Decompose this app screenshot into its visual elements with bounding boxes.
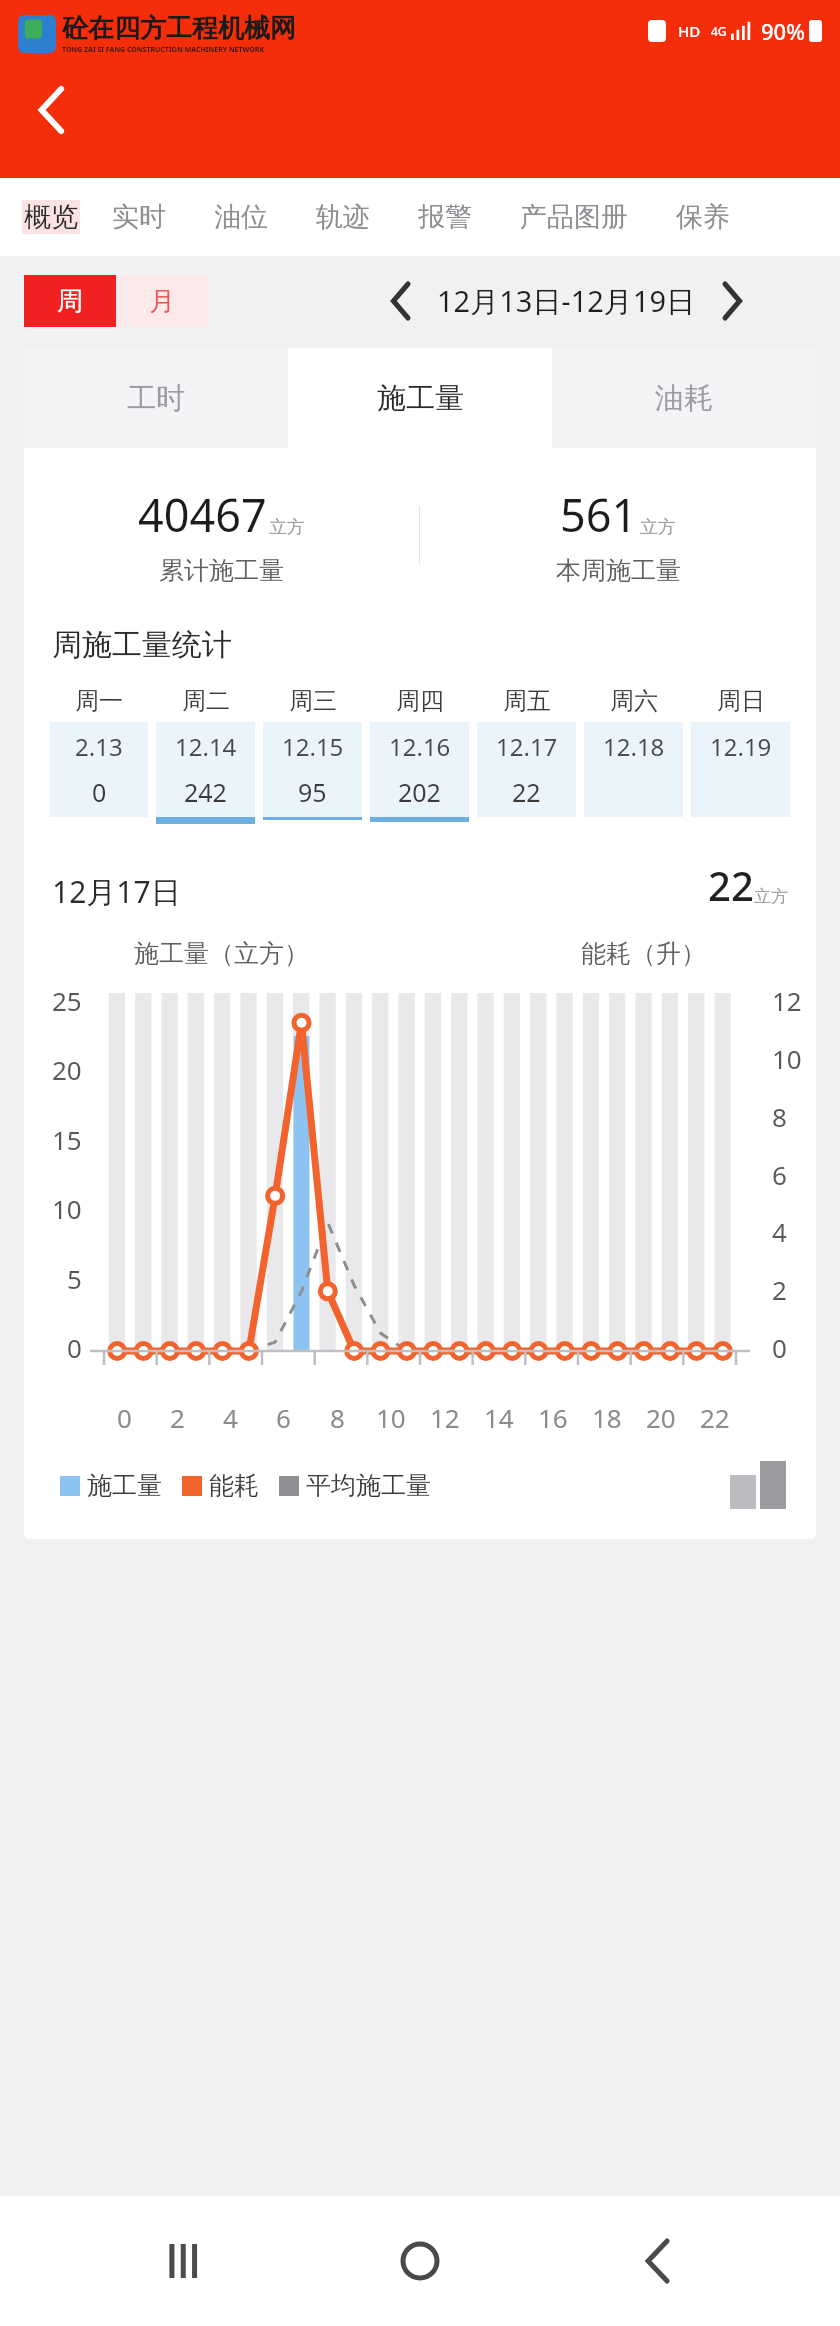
button[interactable]: 月 <box>116 275 208 327</box>
staticText: 周日 <box>717 686 765 716</box>
staticText: 轨迹 <box>316 200 370 234</box>
staticText: 12.16 <box>389 730 451 763</box>
staticText: 产品图册 <box>520 200 628 234</box>
button[interactable]: 轨迹 <box>300 178 386 256</box>
staticText: 8 <box>772 1099 787 1134</box>
button[interactable]: Back <box>603 2206 713 2316</box>
staticText: 12月13日-12月19日 <box>437 281 696 321</box>
staticText: 立方 <box>754 886 788 907</box>
staticText: 12.18 <box>603 730 665 763</box>
staticText: 施工量（立方） <box>134 938 309 969</box>
staticText: 2.13 <box>75 730 123 763</box>
staticText: 6 <box>772 1157 787 1192</box>
staticText: 22 <box>708 858 754 912</box>
staticText: 14 <box>484 1400 514 1435</box>
staticText: 0 <box>117 1400 132 1435</box>
staticText: 12 <box>772 983 802 1018</box>
button[interactable]: 实时 <box>96 178 182 256</box>
staticText: 2 <box>772 1272 787 1307</box>
staticText: 40467 <box>138 484 267 545</box>
staticText: 周三 <box>289 686 337 716</box>
staticText: 12.19 <box>710 730 772 763</box>
button[interactable]: Next week <box>706 275 758 327</box>
staticText: 16 <box>538 1400 568 1435</box>
staticText: 6 <box>276 1400 291 1435</box>
staticText: 施工量 <box>377 380 464 417</box>
staticText: 12.15 <box>282 730 344 763</box>
staticText: 10 <box>772 1041 802 1076</box>
button[interactable]: 报警 <box>402 178 488 256</box>
staticText: 0 <box>67 1330 82 1365</box>
staticText: 202 <box>398 775 441 809</box>
button[interactable]: 概览 <box>22 178 80 256</box>
staticText: 周 <box>57 285 83 318</box>
staticText: 累计施工量 <box>159 555 284 586</box>
staticText: 10 <box>376 1400 406 1435</box>
staticText: 报警 <box>418 200 472 234</box>
staticText: 概览 <box>24 200 78 234</box>
staticText: 4 <box>772 1214 787 1249</box>
staticText: 月 <box>149 285 175 318</box>
button[interactable]: 周一 <box>46 686 152 817</box>
staticText: 周施工量统计 <box>52 626 232 664</box>
button[interactable]: Back <box>24 82 80 138</box>
staticText: 0 <box>92 775 107 809</box>
button[interactable]: Recents <box>128 2206 238 2316</box>
staticText: HD <box>678 21 701 41</box>
staticText: 油耗 <box>655 380 713 417</box>
button[interactable]: Home <box>365 2206 475 2316</box>
staticText: 周四 <box>396 686 444 716</box>
button[interactable]: 周五 <box>473 686 580 817</box>
staticText: 砼在四方工程机械网 <box>62 12 296 45</box>
staticText: 油位 <box>214 200 268 234</box>
staticText: 12月17日 <box>52 871 181 912</box>
staticText: 8 <box>330 1400 345 1435</box>
button[interactable]: 周三 <box>259 686 366 820</box>
staticText: 20 <box>52 1052 82 1087</box>
button[interactable]: 周四 <box>366 686 473 822</box>
button[interactable]: 周日 <box>687 686 794 817</box>
staticText: 5 <box>67 1261 82 1296</box>
staticText: 立方 <box>640 516 676 539</box>
staticText: 周二 <box>182 686 230 716</box>
staticText: 能耗（升） <box>581 938 706 969</box>
staticText: 15 <box>52 1122 82 1157</box>
button[interactable]: 保养 <box>660 178 746 256</box>
staticText: 22 <box>700 1400 730 1435</box>
staticText: 4 <box>223 1400 238 1435</box>
button[interactable]: 周六 <box>580 686 687 817</box>
staticText: 周六 <box>610 686 658 716</box>
staticText: 实时 <box>112 200 166 234</box>
staticText: 平均施工量 <box>306 1470 431 1501</box>
staticText: 22 <box>512 775 541 809</box>
staticText: 242 <box>184 775 227 809</box>
staticText: 施工量 <box>87 1470 162 1501</box>
staticText: TONG ZAI SI FANG CONSTRUCTION MACHINERY … <box>62 45 265 55</box>
button[interactable]: 工时 <box>24 348 288 448</box>
staticText: 4G <box>711 23 727 39</box>
staticText: 90% <box>761 16 805 46</box>
staticText: 保养 <box>676 200 730 234</box>
button[interactable]: 周 <box>24 275 116 327</box>
staticText: 2 <box>170 1400 185 1435</box>
staticText: 18 <box>592 1400 622 1435</box>
button[interactable]: 周二 <box>152 686 259 824</box>
staticText: 561 <box>560 484 638 545</box>
staticText: 25 <box>52 983 82 1018</box>
staticText: 本周施工量 <box>556 555 681 586</box>
staticText: 10 <box>52 1191 82 1226</box>
button[interactable]: 施工量 <box>288 348 552 448</box>
staticText: 工时 <box>127 380 185 417</box>
button[interactable]: 油耗 <box>552 348 816 448</box>
staticText: 12 <box>430 1400 460 1435</box>
staticText: 能耗 <box>209 1470 259 1501</box>
staticText: 20 <box>646 1400 676 1435</box>
staticText: 周一 <box>75 686 123 716</box>
button[interactable]: Previous week <box>375 275 427 327</box>
button[interactable]: 产品图册 <box>504 178 644 256</box>
button[interactable]: 油位 <box>198 178 284 256</box>
staticText: 0 <box>772 1330 787 1365</box>
staticText: 12.14 <box>175 730 237 763</box>
